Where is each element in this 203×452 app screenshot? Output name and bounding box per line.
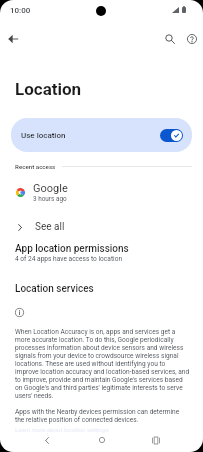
button[interactable]: Back [37, 430, 57, 450]
staticText: See all [35, 221, 65, 233]
button[interactable]: See all [0, 217, 203, 236]
staticText: 10:00 [10, 6, 31, 15]
button[interactable]: Learn more about location settings [15, 426, 109, 433]
button[interactable]: Search settings [158, 27, 182, 51]
button[interactable]: Recent apps [146, 430, 166, 450]
button[interactable]: Navigate up [1, 27, 25, 51]
button[interactable]: Use location [11, 118, 192, 152]
staticText: Recent access [15, 163, 56, 170]
staticText: Location services [15, 283, 94, 295]
staticText: When Location Accuracy is on, apps and s… [15, 328, 190, 400]
staticText: 4 of 24 apps have access to location [15, 255, 123, 263]
button[interactable]: App location permissions [0, 243, 203, 263]
button[interactable]: Google [0, 181, 203, 203]
button[interactable]: Home [92, 430, 112, 450]
staticText: Use location [21, 131, 66, 140]
staticText: Google [33, 182, 68, 195]
staticText: App location permissions [15, 243, 129, 255]
staticText: Apps with the Nearby devices permission … [15, 408, 190, 424]
button[interactable]: Help and feedback [180, 27, 203, 51]
staticText: 3 hours ago [33, 195, 67, 203]
staticText: Location [15, 79, 82, 99]
